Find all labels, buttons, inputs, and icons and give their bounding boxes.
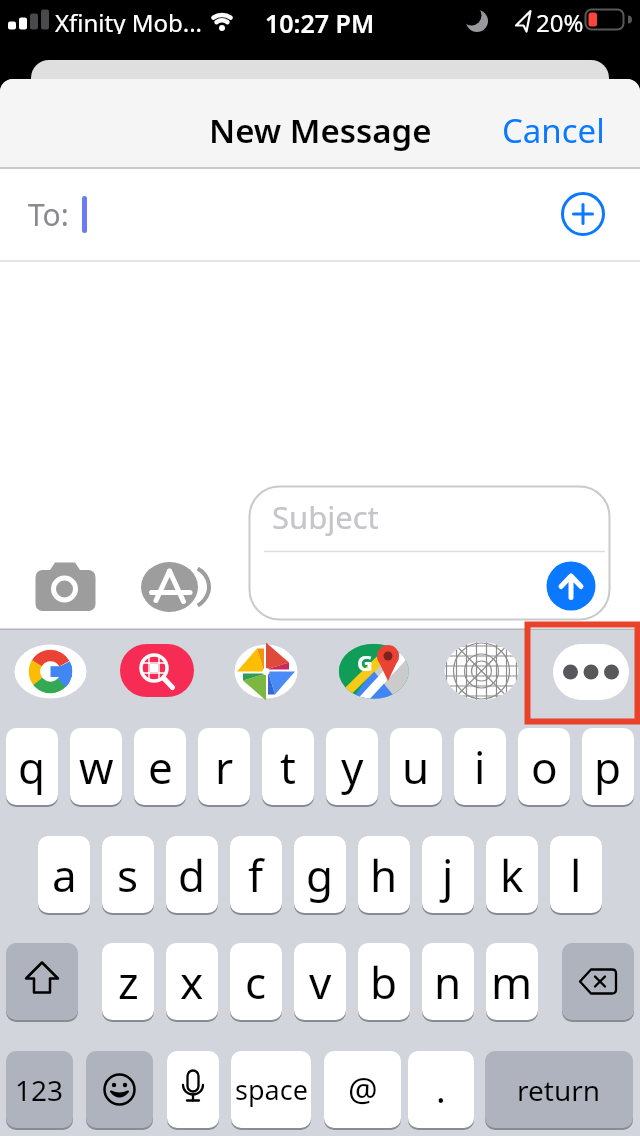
button[interactable]	[544, 559, 599, 614]
button[interactable]	[553, 644, 629, 700]
button[interactable]: h	[358, 836, 410, 913]
button[interactable]: @	[324, 1051, 401, 1128]
staticText: t	[280, 737, 296, 797]
staticText: a	[52, 845, 77, 905]
button[interactable]	[30, 555, 105, 620]
staticText: Xfinity Mob...	[55, 6, 203, 34]
staticText: return	[517, 1071, 601, 1109]
staticText: n	[434, 952, 462, 1012]
staticText: l	[570, 845, 582, 905]
staticText: j	[442, 845, 454, 905]
button[interactable]: k	[486, 836, 538, 913]
staticText: Subject	[272, 496, 379, 536]
button[interactable]: f	[230, 836, 282, 913]
button[interactable]: w	[70, 728, 122, 805]
button[interactable]: n	[422, 943, 474, 1020]
button[interactable]: c	[230, 943, 282, 1020]
staticText: o	[531, 737, 558, 797]
staticText: z	[118, 952, 139, 1012]
button[interactable]: x	[166, 943, 218, 1020]
staticText: f	[248, 845, 264, 905]
staticText: i	[474, 737, 486, 797]
staticText: .	[436, 1065, 446, 1114]
staticText: m	[491, 952, 533, 1012]
staticText: r	[215, 737, 234, 797]
button[interactable]: l	[550, 836, 602, 913]
staticText: New Message	[209, 108, 432, 152]
staticText: y	[341, 737, 364, 797]
button[interactable]: 123	[6, 1051, 73, 1128]
button[interactable]	[562, 943, 634, 1020]
button[interactable]: t	[262, 728, 314, 805]
button[interactable]: d	[166, 836, 218, 913]
staticText: s	[117, 845, 139, 905]
button[interactable]: z	[102, 943, 154, 1020]
button[interactable]: space	[231, 1051, 311, 1128]
staticText: 20%	[536, 6, 584, 34]
button[interactable]: return	[485, 1051, 633, 1128]
button[interactable]: o	[518, 728, 570, 805]
button[interactable]: .	[408, 1051, 474, 1128]
button[interactable]: g	[294, 836, 346, 913]
staticText: g	[306, 845, 334, 905]
staticText: q	[18, 737, 46, 797]
staticText: b	[370, 952, 398, 1012]
button[interactable]	[234, 644, 297, 699]
staticText: p	[594, 737, 622, 797]
staticText: G	[357, 647, 373, 671]
staticText: c	[245, 952, 267, 1012]
button[interactable]: b	[358, 943, 410, 1020]
button[interactable]	[120, 644, 194, 697]
button[interactable]: r	[198, 728, 250, 805]
button[interactable]	[15, 644, 87, 699]
staticText: To:	[28, 194, 77, 235]
button[interactable]: a	[38, 836, 90, 913]
staticText: k	[500, 845, 524, 905]
button[interactable]	[135, 550, 215, 625]
staticText: x	[180, 952, 204, 1012]
button[interactable]: To:	[28, 168, 612, 260]
staticText: h	[370, 845, 398, 905]
staticText: e	[148, 737, 173, 797]
button[interactable]: u	[390, 728, 442, 805]
staticText: Cancel	[502, 108, 605, 152]
button[interactable]	[338, 643, 409, 699]
staticText: 10:27 PM	[265, 6, 375, 34]
button[interactable]	[6, 943, 78, 1020]
button[interactable]: m	[486, 943, 538, 1020]
button[interactable]	[249, 486, 610, 620]
button[interactable]: Cancel	[502, 108, 614, 152]
button[interactable]	[86, 1051, 153, 1128]
button[interactable]: q	[6, 728, 58, 805]
button[interactable]	[444, 642, 519, 700]
button[interactable]	[167, 1051, 219, 1128]
button[interactable]: v	[294, 943, 346, 1020]
button[interactable]: i	[454, 728, 506, 805]
button[interactable]: y	[326, 728, 378, 805]
staticText: @	[348, 1067, 378, 1112]
button[interactable]: s	[102, 836, 154, 913]
staticText: w	[79, 737, 114, 797]
staticText: u	[402, 737, 430, 797]
staticText: d	[178, 845, 206, 905]
button[interactable]	[540, 170, 630, 260]
staticText: v	[309, 952, 332, 1012]
button[interactable]: j	[422, 836, 474, 913]
button[interactable]: p	[582, 728, 634, 805]
button[interactable]: e	[134, 728, 186, 805]
staticText: 123	[15, 1071, 64, 1109]
staticText: space	[235, 1071, 308, 1108]
